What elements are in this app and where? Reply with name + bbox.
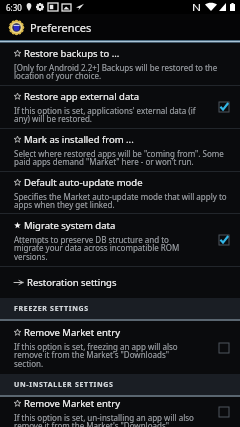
staticText: 6:30 xyxy=(6,2,22,13)
staticText: If this option is set, applications' ext… xyxy=(14,105,199,124)
button[interactable]: Restore app external data xyxy=(0,86,240,128)
staticText: Default auto-update mode xyxy=(24,176,143,189)
button[interactable]: Toggle option xyxy=(207,214,240,266)
staticText: [Only for Android 2.2+] Backups will be … xyxy=(14,62,227,81)
button[interactable]: Mark as installed from ... xyxy=(0,129,240,171)
button[interactable]: Remove Market entry xyxy=(0,321,240,374)
staticText: Migrate system data xyxy=(24,219,116,232)
button[interactable]: Migrate system data xyxy=(0,214,240,266)
staticText: Preferences xyxy=(30,20,92,35)
staticText: If this option is set, un-installing an … xyxy=(14,412,199,427)
staticText: Attempts to preserve DB structure and to… xyxy=(14,234,199,262)
button[interactable]: Default auto-update mode xyxy=(0,172,240,213)
staticText: Select where restored apps will be "comi… xyxy=(14,148,227,167)
staticText: UN-INSTALLER SETTINGS xyxy=(14,380,114,390)
button[interactable]: Remove Market entry xyxy=(0,397,240,427)
staticText: FREEZER SETTINGS xyxy=(14,304,89,314)
staticText: Specifies the Market auto-update mode th… xyxy=(14,191,227,210)
staticText: Remove Market entry xyxy=(24,397,120,410)
button[interactable]: Restore backups to ... xyxy=(0,43,240,85)
button[interactable]: Toggle option xyxy=(207,321,240,374)
button[interactable]: Toggle option xyxy=(207,397,240,427)
staticText: Restore app external data xyxy=(24,90,139,103)
button[interactable]: Restoration settings xyxy=(0,267,240,298)
staticText: Remove Market entry xyxy=(24,326,120,339)
staticText: Restore backups to ... xyxy=(24,47,120,60)
staticText: If this option is set, freezing an app w… xyxy=(14,341,199,369)
staticText: Restoration settings xyxy=(27,276,117,289)
button[interactable]: Toggle option xyxy=(207,86,240,128)
staticText: Mark as installed from ... xyxy=(24,133,134,146)
button[interactable]: Titanium Backup xyxy=(9,20,24,35)
